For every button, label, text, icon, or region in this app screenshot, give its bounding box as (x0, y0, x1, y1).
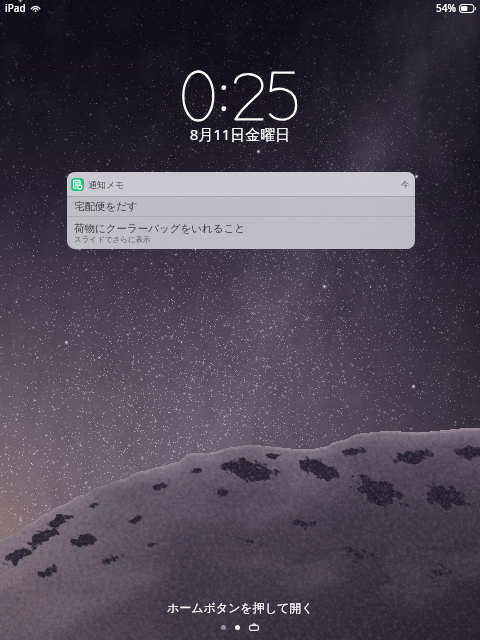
staticText: ホームボタンを押して開く (167, 600, 314, 615)
other: Camera (249, 623, 259, 631)
button[interactable]: 通知メモ (67, 172, 415, 249)
staticText: 宅配便をだす (74, 200, 415, 213)
staticText: 荷物にクーラーバッグをいれること (74, 222, 245, 235)
other: Wi-Fi (30, 3, 41, 14)
staticText: 通知メモ (88, 179, 125, 190)
other: Battery 54 percent (459, 4, 476, 13)
staticText: iPad (5, 1, 26, 15)
staticText: 54% (436, 1, 456, 15)
button[interactable]: ホームボタンを押して開く (159, 598, 322, 617)
staticText: スライドでさらに表示 (74, 235, 151, 244)
staticText: 今 (401, 179, 409, 189)
staticText: 8月11日金曜日 (0, 124, 480, 144)
